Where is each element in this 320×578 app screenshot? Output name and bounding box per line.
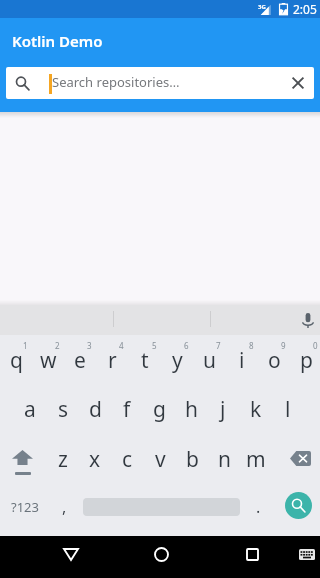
staticText: j bbox=[220, 395, 226, 424]
staticText: 3 bbox=[87, 340, 92, 351]
staticText: c bbox=[122, 445, 133, 474]
staticText: 6 bbox=[184, 340, 189, 351]
staticText: u bbox=[203, 346, 216, 375]
staticText: w bbox=[40, 346, 57, 375]
staticText: 7 bbox=[216, 340, 221, 351]
button[interactable]: s bbox=[47, 385, 79, 433]
staticText: b bbox=[186, 445, 199, 474]
button[interactable]: l bbox=[272, 385, 304, 433]
staticText: ?123 bbox=[11, 498, 39, 516]
staticText: s bbox=[58, 395, 69, 424]
staticText: x bbox=[89, 445, 101, 474]
staticText: 0 bbox=[313, 340, 318, 351]
button[interactable]: 4 bbox=[96, 339, 128, 387]
button[interactable]: Switch keyboard bbox=[288, 536, 320, 572]
button[interactable]: 0 bbox=[290, 339, 320, 387]
button[interactable]: Back bbox=[50, 536, 91, 572]
staticText: m bbox=[246, 445, 266, 474]
button[interactable]: k bbox=[240, 385, 272, 433]
button[interactable]: Home bbox=[141, 536, 182, 572]
button[interactable]: Shift bbox=[0, 435, 45, 483]
button[interactable]: Clear search bbox=[282, 67, 314, 99]
button[interactable]: c bbox=[111, 435, 143, 483]
staticText: 5 bbox=[152, 340, 157, 351]
button[interactable]: f bbox=[111, 385, 143, 433]
button[interactable]: 1 bbox=[0, 339, 32, 387]
button[interactable]: 6 bbox=[161, 339, 193, 387]
staticText: k bbox=[250, 395, 262, 424]
button[interactable]: v bbox=[144, 435, 176, 483]
staticText: 8 bbox=[249, 340, 254, 351]
staticText: p bbox=[300, 346, 313, 375]
button[interactable]: 9 bbox=[258, 339, 290, 387]
staticText: v bbox=[155, 445, 166, 474]
button[interactable]: 3 bbox=[64, 339, 96, 387]
staticText: . bbox=[256, 496, 261, 518]
staticText: o bbox=[268, 346, 281, 375]
button[interactable]: b bbox=[176, 435, 208, 483]
staticText: 2 bbox=[55, 340, 60, 351]
button[interactable]: Voice input bbox=[295, 305, 320, 335]
staticText: t bbox=[141, 346, 149, 375]
button[interactable]: ?123 bbox=[0, 483, 47, 531]
button[interactable]: 7 bbox=[193, 339, 225, 387]
button[interactable]: Backspace bbox=[275, 435, 320, 483]
staticText: h bbox=[185, 395, 198, 424]
staticText: g bbox=[153, 395, 166, 424]
staticText: n bbox=[218, 445, 231, 474]
button[interactable]: 8 bbox=[226, 339, 258, 387]
button[interactable]: x bbox=[79, 435, 111, 483]
staticText: 4 bbox=[119, 340, 124, 351]
button[interactable]: Search bbox=[285, 492, 312, 519]
staticText: 3G bbox=[258, 3, 266, 11]
staticText: 2:05 bbox=[293, 1, 317, 17]
staticText: e bbox=[74, 346, 86, 375]
staticText: 1 bbox=[23, 340, 28, 351]
staticText: z bbox=[58, 445, 68, 474]
staticText: q bbox=[10, 346, 23, 375]
button[interactable]: h bbox=[175, 385, 207, 433]
button[interactable]: Recents bbox=[232, 536, 273, 572]
staticText: Search repositories… bbox=[52, 73, 180, 91]
button[interactable]: z bbox=[47, 435, 79, 483]
staticText: l bbox=[285, 395, 291, 424]
staticText: f bbox=[123, 395, 131, 424]
button[interactable]: a bbox=[14, 385, 46, 433]
button[interactable]: d bbox=[79, 385, 111, 433]
staticText: , bbox=[62, 496, 67, 518]
button[interactable]: g bbox=[143, 385, 175, 433]
button[interactable]: 2 bbox=[32, 339, 64, 387]
staticText: d bbox=[89, 395, 102, 424]
staticText: 9 bbox=[281, 340, 286, 351]
staticText: a bbox=[24, 395, 36, 424]
button[interactable]: . bbox=[243, 483, 273, 531]
button[interactable]: m bbox=[240, 435, 272, 483]
staticText: y bbox=[172, 346, 183, 375]
button[interactable]: n bbox=[208, 435, 240, 483]
button[interactable]: j bbox=[207, 385, 239, 433]
button[interactable]: , bbox=[47, 483, 81, 531]
staticText: r bbox=[108, 346, 117, 375]
staticText: Kotlin Demo bbox=[12, 31, 103, 51]
button[interactable]: Search repositories… bbox=[6, 67, 314, 99]
button[interactable]: 5 bbox=[129, 339, 161, 387]
staticText: i bbox=[239, 346, 245, 375]
